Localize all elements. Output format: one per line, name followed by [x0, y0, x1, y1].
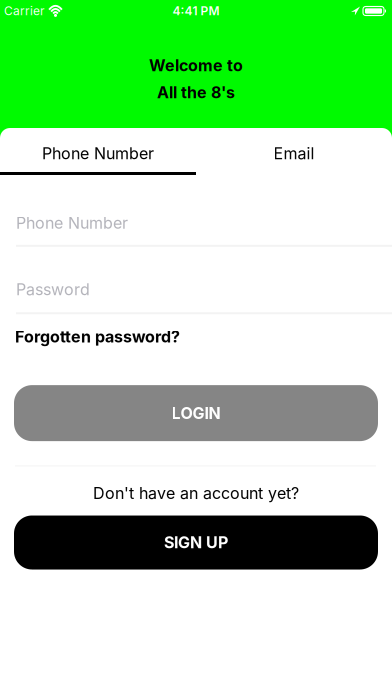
staticText: LOGIN — [171, 404, 220, 423]
button[interactable]: LOGIN — [14, 385, 378, 441]
staticText: Email — [273, 144, 314, 163]
staticText: 4:41 PM — [172, 4, 219, 18]
staticText: Forgotten password? — [15, 327, 180, 346]
staticText: Carrier — [4, 4, 45, 18]
button[interactable]: Phone Number — [0, 128, 196, 172]
staticText: Phone Number — [42, 144, 154, 163]
staticText: SIGN UP — [164, 533, 228, 552]
staticText: Don't have an account yet? — [93, 484, 299, 502]
staticText: Welcome to — [149, 56, 243, 75]
button[interactable]: Forgotten password? — [15, 327, 180, 346]
button[interactable]: SIGN UP — [14, 515, 378, 569]
staticText: Password — [16, 280, 90, 299]
staticText: All the 8's — [157, 83, 235, 102]
staticText: Phone Number — [16, 213, 128, 232]
button[interactable]: Email — [196, 128, 392, 172]
